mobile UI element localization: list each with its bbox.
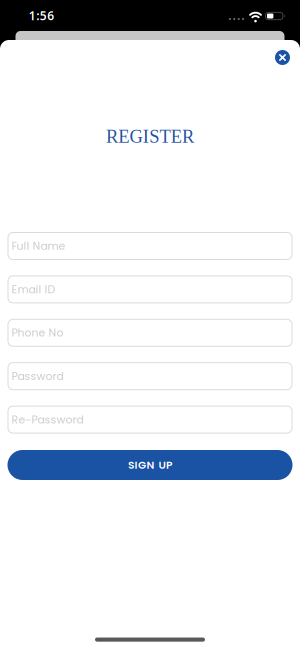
button[interactable]	[275, 50, 290, 65]
staticText: Re-Password	[11, 412, 83, 427]
staticText: REGISTER	[106, 126, 194, 147]
staticText: Phone No	[11, 325, 63, 340]
button[interactable]: Phone No	[7, 319, 292, 347]
staticText: Full Name	[11, 238, 65, 253]
button[interactable]: Email ID	[7, 275, 292, 303]
staticText: SIGN UP	[128, 457, 172, 472]
button[interactable]: Password	[7, 362, 292, 390]
button[interactable]: Re-Password	[7, 406, 292, 434]
button[interactable]: SIGN UP	[7, 450, 292, 480]
button[interactable]: Full Name	[7, 232, 292, 260]
staticText: Password	[11, 369, 63, 384]
staticText: Email ID	[11, 282, 55, 297]
staticText: 1:56	[29, 7, 54, 23]
